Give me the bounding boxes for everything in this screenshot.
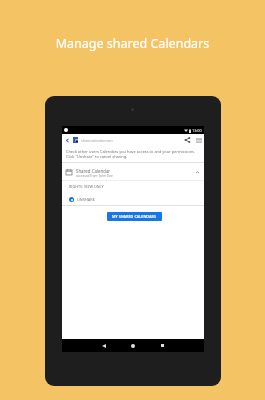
staticText: sharecalendar.com [81, 138, 113, 143]
button[interactable]: Recent apps [154, 339, 170, 352]
button[interactable]: More options [193, 134, 204, 146]
button[interactable]: Back [62, 134, 73, 146]
button[interactable]: Home [125, 339, 141, 352]
staticText: RIGHTS: VIEW ONLY [69, 184, 104, 189]
staticText: UNSHARE [77, 197, 95, 202]
button[interactable]: Shared Calendar [62, 163, 204, 180]
staticText: Check other users Calendars you have acc… [66, 149, 201, 159]
staticText: 13:00 [192, 128, 202, 133]
staticText: MY SHARED CALENDARS [112, 214, 157, 219]
button[interactable]: UNSHARE [62, 197, 204, 205]
staticText: Shared Calendar [76, 168, 111, 174]
staticText: Manage shared Calendars [0, 35, 265, 52]
button[interactable]: Back [96, 339, 112, 352]
staticText: accessed from John Doe [76, 174, 113, 178]
button[interactable]: MY SHARED CALENDARS [107, 212, 162, 221]
button[interactable]: Share [182, 134, 193, 146]
